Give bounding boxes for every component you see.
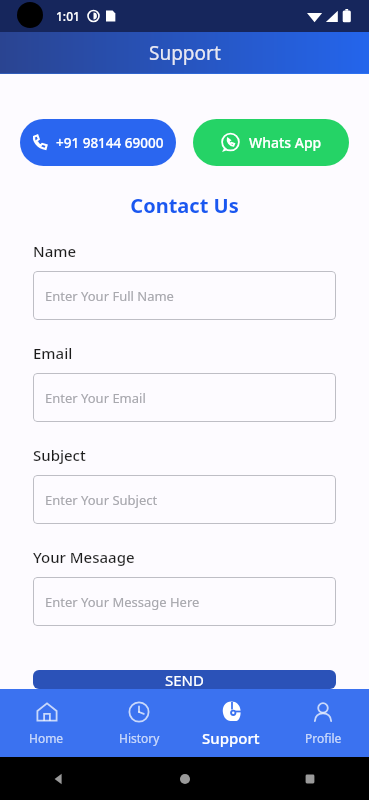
button[interactable]: Enter Your Subject (33, 475, 336, 524)
button[interactable]: Back (48, 768, 70, 790)
button[interactable]: SEND (33, 670, 336, 689)
staticText: Contact Us (0, 192, 369, 219)
staticText: Profile (305, 730, 342, 746)
staticText: SEND (165, 670, 204, 689)
staticText: Enter Your Message Here (45, 593, 200, 611)
staticText: Enter Your Full Name (45, 287, 174, 305)
button[interactable]: Enter Your Full Name (33, 271, 336, 320)
staticText: Support (149, 40, 221, 66)
staticText: Name (33, 241, 77, 261)
staticText: Home (29, 730, 64, 746)
staticText: Your Mesaage (33, 547, 135, 567)
staticText: +91 98144 69000 (56, 134, 164, 152)
staticText: History (119, 730, 160, 746)
button[interactable]: Support (185, 689, 277, 757)
staticText: Whats App (249, 133, 322, 152)
staticText: 1:01 (56, 8, 80, 24)
button[interactable]: Profile (277, 689, 369, 757)
button[interactable]: History (93, 689, 185, 757)
button[interactable]: Enter Your Message Here (33, 577, 336, 626)
button[interactable]: Home (0, 689, 93, 757)
staticText: Email (33, 343, 73, 363)
staticText: Enter Your Email (45, 389, 146, 407)
button[interactable]: Recent apps (299, 768, 321, 790)
button[interactable]: Enter Your Email (33, 373, 336, 422)
staticText: Subject (33, 445, 86, 465)
button[interactable]: +91 98144 69000 (20, 119, 176, 166)
button[interactable]: Whats App (193, 119, 349, 166)
staticText: Support (202, 728, 260, 748)
staticText: Enter Your Subject (45, 491, 158, 509)
button[interactable]: Home (174, 768, 196, 790)
